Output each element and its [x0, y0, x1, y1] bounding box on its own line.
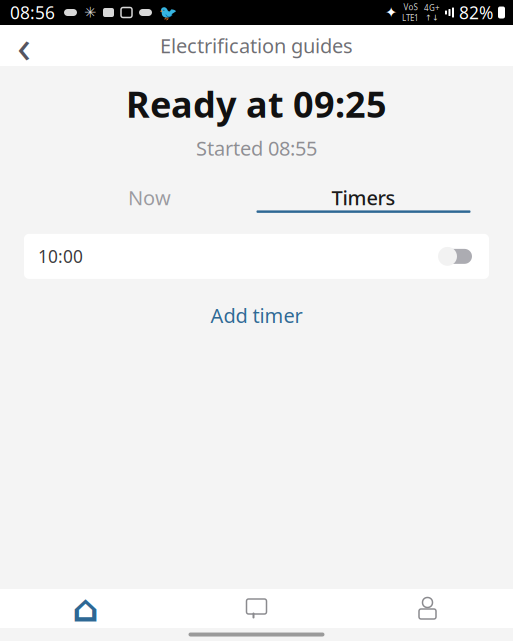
button[interactable]: Timers — [256, 184, 470, 213]
staticText: LTE1 — [402, 12, 419, 23]
staticText: ‹ — [17, 15, 31, 76]
button[interactable]: Now — [42, 184, 256, 213]
button[interactable]: Add timer — [188, 292, 324, 338]
staticText: ↑↓ — [425, 13, 439, 22]
staticText: ⌂ — [72, 587, 99, 630]
staticText: ✳ — [84, 4, 96, 21]
staticText: Ready at 09:25 — [126, 80, 387, 128]
staticText: Started 08:55 — [196, 135, 317, 161]
staticText: Now — [128, 184, 171, 211]
button[interactable]: Home — [0, 589, 171, 628]
staticText: Add timer — [210, 302, 302, 328]
staticText: ✦ — [385, 4, 397, 21]
staticText: 08:56 — [10, 1, 55, 24]
staticText: 10:00 — [38, 245, 83, 268]
staticText: 82% — [459, 1, 493, 24]
staticText: Timers — [331, 184, 395, 211]
staticText: Electrification guides — [160, 32, 353, 59]
staticText: 🐦 — [159, 4, 177, 21]
staticText: VoS — [403, 2, 417, 12]
button[interactable]: Messages — [171, 589, 342, 628]
button[interactable]: Back — [0, 25, 48, 66]
button[interactable]: Profile — [342, 589, 513, 628]
staticText: 4G+ — [424, 3, 440, 13]
button[interactable]: 10:00 — [24, 234, 489, 279]
